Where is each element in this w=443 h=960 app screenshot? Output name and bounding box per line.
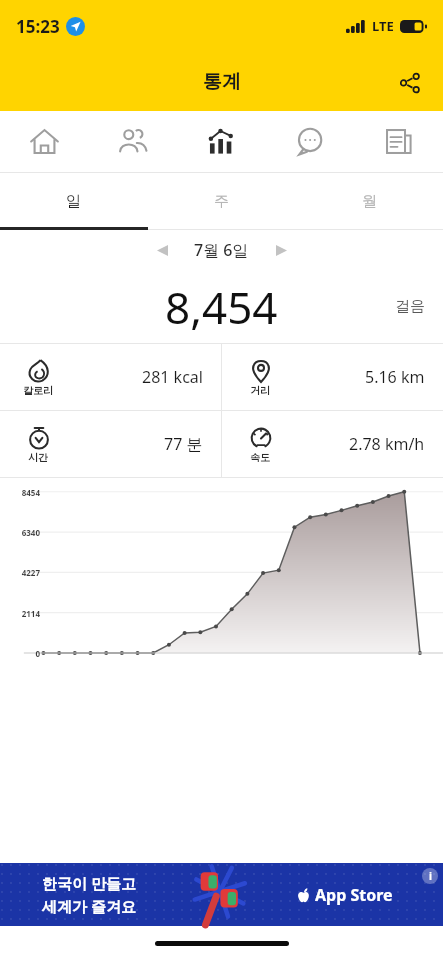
staticText: 0 [4,648,40,659]
staticText: 한국이 만들고 [42,873,136,893]
staticText: 6340 [4,527,40,538]
button[interactable]: Share [385,58,433,106]
button[interactable]: 시간 [0,411,221,477]
staticText: i [429,869,432,883]
staticText: 주 [214,192,229,211]
button[interactable]: 일 [0,173,147,230]
staticText: 5.16 km [365,366,425,388]
staticText: 8454 [4,487,40,498]
button[interactable]: Next day [265,234,297,266]
staticText: 시간 [28,451,48,464]
button[interactable]: 칼로리 [0,344,221,410]
staticText: LTE [372,17,394,35]
staticText: 281 kcal [142,366,203,388]
button[interactable]: Previous day [146,234,178,266]
button[interactable]: Ad info [422,868,438,884]
staticText: App Store [315,884,393,906]
staticText: 속도 [250,451,270,464]
staticText: 4227 [4,567,40,578]
button[interactable]: 거리 [222,344,443,410]
staticText: 거리 [250,384,270,397]
button[interactable]: 월 [295,173,443,230]
staticText: 7월 6일 [194,239,249,261]
staticText: 칼로리 [23,384,53,397]
staticText: 2.78 km/h [349,433,425,455]
button[interactable]: News [354,111,443,172]
staticText: 세계가 즐겨요 [42,896,136,916]
staticText: 8,454 [165,277,278,337]
staticText: 2114 [4,608,40,619]
button[interactable]: Advertisement [0,863,443,926]
button[interactable]: Home [0,111,88,172]
staticText: 77 분 [164,433,203,455]
staticText: 월 [362,192,377,211]
staticText: 일 [66,192,81,211]
staticText: 통계 [203,70,241,94]
button[interactable]: Statistics [176,111,265,172]
button[interactable]: Messages [265,111,354,172]
button[interactable]: 주 [147,173,295,230]
button[interactable]: Friends [88,111,176,172]
staticText: 걸음 [395,297,425,316]
button[interactable]: 속도 [222,411,443,477]
staticText: 15:23 [16,15,60,38]
